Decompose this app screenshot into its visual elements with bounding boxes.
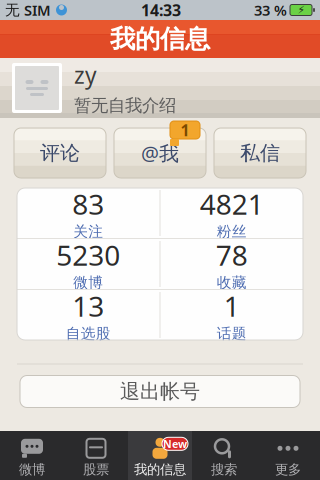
staticText: 13 [72,287,104,325]
staticText: New [163,437,187,451]
staticText: 我的信息 [110,23,210,54]
staticText: 收藏 [217,274,247,292]
staticText: 股票 [83,461,109,478]
button[interactable]: 78 [160,239,303,289]
button[interactable]: 83 [17,188,159,238]
staticText: 我的信息 [134,461,186,478]
staticText: 微博 [19,461,45,478]
staticText: 搜索 [211,461,237,478]
staticText: 暂无自我介绍 [74,95,176,116]
button[interactable]: 退出帐号 [0,375,320,407]
button[interactable]: 5230 [17,239,159,289]
staticText: zy [74,60,97,90]
staticText: 私信 [240,141,280,165]
staticText: 78 [216,236,248,274]
staticText: 评论 [40,141,80,165]
button[interactable]: 私信 [214,128,306,178]
staticText: @我 [141,140,179,166]
button[interactable]: 13 [17,290,159,340]
staticText: 无 [5,1,20,19]
staticText: 自选股 [66,325,111,343]
staticText: 1 [224,287,240,325]
staticText: 5230 [56,236,120,274]
staticText: 微博 [73,274,103,292]
staticText: SIM [20,0,55,20]
staticText: 话题 [217,325,247,343]
button[interactable]: 股票 [64,431,128,480]
button[interactable]: @我 [114,128,206,178]
staticText: 关注 [73,223,103,241]
staticText: 更多 [275,461,301,478]
button[interactable]: 1 [160,290,303,340]
button[interactable]: 4821 [160,188,303,238]
staticText: 14:33 [141,0,181,21]
button[interactable]: 微博 [0,431,64,480]
button[interactable]: 评论 [14,128,106,178]
button[interactable]: 搜索 [192,431,256,480]
button[interactable]: New [128,431,192,480]
staticText: ⚡︎ [297,4,304,16]
staticText: 粉丝 [217,223,247,241]
staticText: 1 [180,119,189,141]
staticText: 33 % [254,0,287,20]
staticText: 4821 [200,185,264,223]
staticText: 退出帐号 [120,379,200,404]
staticText: 83 [72,185,104,223]
button[interactable]: 更多 [256,431,320,480]
